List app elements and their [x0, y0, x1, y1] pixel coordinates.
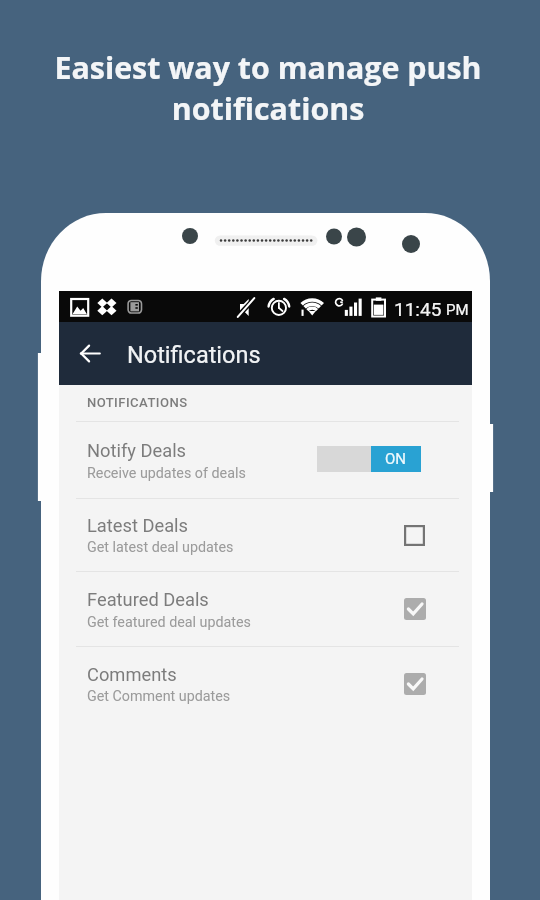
button[interactable]: Latest Deals checkbox	[404, 525, 425, 546]
staticText: Get Comment updates	[87, 688, 231, 705]
button[interactable]: Checked checkbox	[404, 598, 426, 620]
button[interactable]: ON	[317, 446, 421, 472]
staticText: PM	[446, 301, 469, 319]
staticText: 11:45	[394, 298, 442, 320]
button[interactable]: Featured Deals	[59, 571, 472, 646]
staticText: Notifications	[127, 341, 261, 369]
button[interactable]: Latest Deals	[59, 498, 472, 572]
staticText: Receive updates of deals	[87, 465, 246, 482]
staticText: Comments	[87, 664, 177, 685]
staticText: Get featured deal updates	[87, 614, 251, 631]
staticText: NOTIFICATIONS	[87, 395, 188, 410]
staticText: Latest Deals	[87, 515, 189, 536]
staticText: Notify Deals	[87, 440, 187, 461]
staticText: Get latest deal updates	[87, 539, 234, 556]
staticText: ON	[385, 450, 407, 468]
staticText: Easiest way to manage push notifications	[0, 47, 538, 129]
button[interactable]: Back	[68, 331, 112, 375]
button[interactable]: Notify Deals	[59, 421, 472, 498]
staticText: Featured Deals	[87, 589, 209, 610]
button[interactable]: Comments	[59, 646, 472, 721]
button[interactable]: Checked checkbox	[404, 673, 426, 695]
